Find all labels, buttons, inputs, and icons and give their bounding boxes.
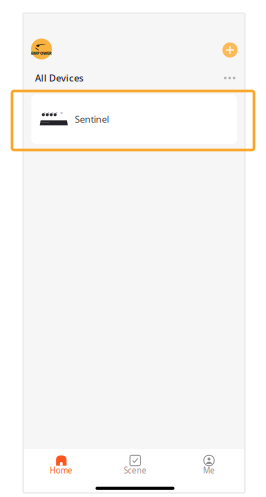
staticText: Sentinel <box>75 113 109 125</box>
button[interactable]: Scene <box>99 449 171 492</box>
button[interactable]: More options <box>222 71 238 85</box>
staticText: EMPOWER <box>31 50 52 56</box>
staticText: Home <box>50 465 73 476</box>
button[interactable]: Add device <box>222 42 238 58</box>
button[interactable]: Home <box>25 449 97 492</box>
staticText: Me <box>203 465 215 476</box>
button[interactable]: Sentinel <box>31 94 237 144</box>
button[interactable]: Empower account <box>31 38 52 59</box>
staticText: All Devices <box>35 72 84 84</box>
staticText: Scene <box>124 465 147 476</box>
button[interactable]: Me <box>173 449 245 492</box>
